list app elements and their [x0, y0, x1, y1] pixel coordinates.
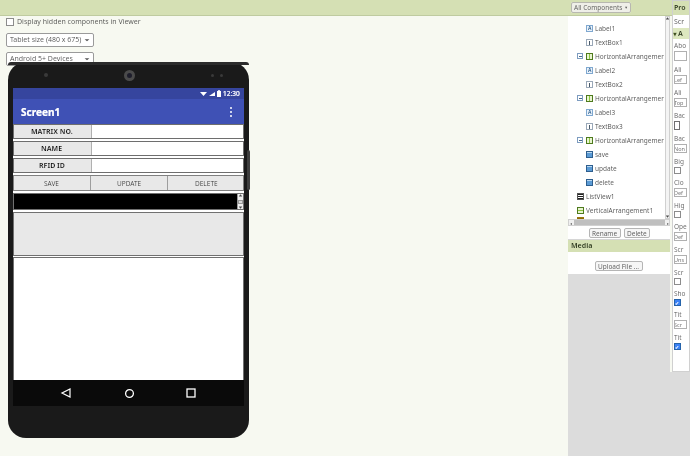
button[interactable]: Hig: [672, 199, 690, 220]
staticText: ▸: [667, 221, 670, 225]
button[interactable]: Rename: [589, 228, 621, 238]
staticText: ▼: [673, 31, 677, 37]
button[interactable]: Tit: [672, 331, 690, 352]
button[interactable]: HorizontalArrangemer: [568, 133, 670, 147]
staticText: Ali: [674, 65, 682, 74]
button[interactable]: UPDATE: [91, 175, 167, 191]
button[interactable]: save: [568, 147, 670, 161]
button[interactable]: Sho: [672, 287, 690, 308]
staticText: Uns: [674, 256, 685, 263]
button[interactable]: update: [568, 161, 670, 175]
staticText: Non: [674, 145, 685, 152]
button[interactable]: Android 5+ Devices: [6, 52, 94, 66]
button[interactable]: Ope: [672, 220, 690, 243]
staticText: Scr: [674, 321, 682, 328]
staticText: Bac: [674, 134, 685, 143]
staticText: Tit: [674, 333, 682, 342]
button[interactable]: DELETE: [168, 175, 244, 191]
staticText: UPDATE: [117, 179, 142, 188]
button[interactable]: SAVE: [13, 175, 90, 191]
staticText: Def: [674, 189, 684, 196]
staticText: Rename: [592, 229, 618, 238]
staticText: TextBox3: [595, 122, 623, 131]
button[interactable]: delete: [568, 175, 670, 189]
button[interactable]: More options: [224, 105, 238, 119]
staticText: ◂: [570, 221, 573, 225]
button[interactable]: Tablet size (480 x 675): [6, 33, 94, 47]
staticText: Scr: [674, 268, 684, 277]
button[interactable]: Back: [56, 383, 76, 403]
button[interactable]: [92, 124, 244, 139]
button[interactable]: Ali: [672, 63, 690, 86]
staticText: Tablet size (480 x 675): [10, 35, 82, 45]
button[interactable]: Recent apps: [181, 383, 201, 403]
button[interactable]: [92, 141, 244, 156]
staticText: Display hidden components in Viewer: [17, 17, 141, 27]
button[interactable]: Abo: [672, 39, 690, 63]
staticText: ✓: [675, 300, 680, 306]
staticText: Big: [674, 157, 684, 166]
button[interactable]: Upload File ...: [595, 261, 643, 271]
staticText: Bac: [674, 111, 685, 120]
staticText: Top: [674, 99, 684, 106]
staticText: Delete: [627, 229, 647, 238]
button[interactable]: ListView1: [568, 189, 670, 203]
staticText: Scr: [674, 17, 685, 27]
button[interactable]: Clo: [672, 176, 690, 199]
staticText: save: [595, 150, 609, 159]
button[interactable]: [13, 212, 244, 256]
staticText: Tit: [674, 310, 682, 319]
button[interactable]: A: [568, 63, 670, 77]
button[interactable]: Scr: [672, 243, 690, 266]
button[interactable]: Display hidden components in Viewer: [6, 17, 141, 27]
staticText: Scr: [674, 245, 684, 254]
button[interactable]: TextBox1: [568, 35, 670, 49]
staticText: Hig: [674, 201, 685, 210]
staticText: update: [595, 164, 617, 173]
button[interactable]: TextBox3: [568, 119, 670, 133]
button[interactable]: Big: [672, 155, 690, 176]
staticText: Def: [674, 233, 684, 240]
staticText: A: [588, 109, 592, 116]
staticText: Screen1: [21, 105, 61, 119]
button[interactable]: A: [568, 21, 670, 35]
button[interactable]: [13, 257, 244, 406]
button[interactable]: All Components: [571, 2, 631, 13]
button[interactable]: Tit: [672, 308, 690, 331]
staticText: VerticalArrangement1: [586, 206, 654, 215]
button[interactable]: Ali: [672, 86, 690, 109]
button[interactable]: Bac: [672, 132, 690, 155]
staticText: TextBox2: [595, 80, 623, 89]
button[interactable]: Scr: [672, 266, 690, 287]
staticText: Label3: [595, 108, 616, 117]
button[interactable]: HorizontalArrangemer: [568, 91, 670, 105]
button[interactable]: Delete: [624, 228, 650, 238]
button[interactable]: HorizontalArrangemer: [568, 49, 670, 63]
button[interactable]: TextBox2: [568, 77, 670, 91]
button[interactable]: A: [568, 105, 670, 119]
staticText: A: [588, 67, 592, 74]
button[interactable]: VerticalArrangement1: [568, 203, 670, 217]
button[interactable]: [92, 158, 244, 173]
staticText: HorizontalArrangemer: [595, 94, 664, 103]
staticText: HorizontalArrangemer: [595, 52, 664, 61]
staticText: Lef: [674, 76, 682, 83]
staticText: ▾: [625, 5, 628, 10]
staticText: Sho: [674, 289, 686, 298]
staticText: Ali: [674, 88, 682, 97]
staticText: Label2: [595, 66, 616, 75]
staticText: Label1: [595, 24, 616, 33]
staticText: 12:30: [223, 89, 240, 98]
staticText: SAVE: [44, 179, 59, 188]
staticText: ✓: [675, 344, 680, 350]
staticText: Upload File ...: [598, 262, 640, 271]
staticText: Ope: [674, 222, 687, 231]
staticText: RFID ID: [39, 161, 65, 171]
staticText: Abo: [674, 41, 687, 50]
staticText: A: [678, 29, 683, 39]
staticText: NAME: [41, 144, 63, 154]
button[interactable]: FirebaseDB1: [568, 217, 670, 219]
staticText: TextBox1: [595, 38, 623, 47]
button[interactable]: Home: [119, 383, 139, 403]
button[interactable]: Bac: [672, 109, 690, 132]
